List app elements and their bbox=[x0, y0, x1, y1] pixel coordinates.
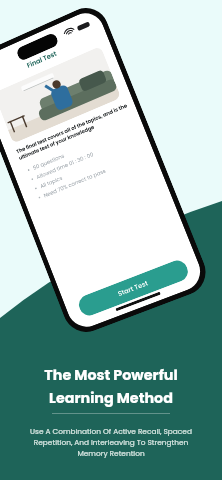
button[interactable]: Start Test bbox=[76, 257, 191, 318]
staticText: Final Test bbox=[25, 49, 58, 71]
staticText: Start Test bbox=[116, 278, 149, 298]
staticText: Need 70% correct to pass bbox=[42, 167, 107, 199]
staticText: The Most Powerful Learning Method bbox=[44, 365, 178, 408]
staticText: 50 questions bbox=[32, 151, 66, 172]
staticText: Use A Combination Of Active Recall, Spac… bbox=[26, 426, 196, 458]
staticText: The final test covers all of the topics,… bbox=[15, 101, 134, 162]
staticText: All topics bbox=[39, 174, 64, 190]
staticText: Allowed time 01 : 30 : 00 bbox=[35, 150, 95, 181]
